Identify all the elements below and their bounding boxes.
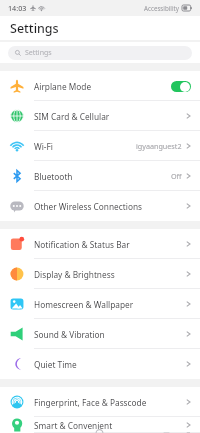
button[interactable]: Airplane Mode: [0, 71, 200, 101]
button[interactable]: Quiet Time: [0, 349, 200, 379]
button[interactable]: Smart & Convenient: [0, 417, 200, 433]
button[interactable]: Wi-Fi: [0, 131, 200, 161]
staticText: Accessibility: [144, 4, 179, 12]
staticText: Fingerprint, Face & Passcode: [34, 397, 186, 408]
button[interactable]: Airplane Mode toggle: [171, 81, 191, 92]
staticText: Homescreen & Wallpaper: [34, 299, 186, 310]
staticText: Quiet Time: [34, 359, 186, 370]
staticText: Settings: [25, 48, 52, 58]
button[interactable]: SIM Card & Cellular: [0, 101, 200, 131]
button[interactable]: Homescreen & Wallpaper: [0, 289, 200, 319]
staticText: Other Wireless Connections: [34, 201, 186, 212]
staticText: Bluetooth: [34, 171, 171, 182]
button[interactable]: Sound & Vibration: [0, 319, 200, 349]
staticText: 14:03: [8, 3, 27, 13]
staticText: Settings: [10, 20, 59, 37]
staticText: Notification & Status Bar: [34, 239, 186, 250]
staticText: Smart & Convenient: [34, 420, 186, 431]
staticText: Wi-Fi: [34, 141, 136, 152]
button[interactable]: Display & Brightness: [0, 259, 200, 289]
staticText: Sound & Vibration: [34, 329, 186, 340]
staticText: SIM Card & Cellular: [34, 111, 186, 122]
button[interactable]: Bluetooth: [0, 161, 200, 191]
button[interactable]: Fingerprint, Face & Passcode: [0, 387, 200, 417]
staticText: Off: [171, 171, 182, 181]
button[interactable]: Notification & Status Bar: [0, 229, 200, 259]
staticText: igyaanguest2: [136, 141, 182, 151]
button[interactable]: Other Wireless Connections: [0, 191, 200, 221]
staticText: Display & Brightness: [34, 269, 186, 280]
button[interactable]: Settings: [8, 46, 192, 60]
staticText: Airplane Mode: [34, 81, 171, 92]
